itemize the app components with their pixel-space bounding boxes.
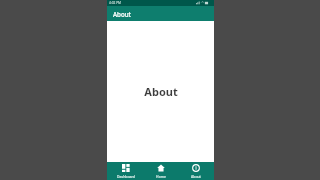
staticText: Home: [156, 174, 166, 179]
staticText: 4:02 PM: [109, 1, 122, 5]
button[interactable]: Home: [144, 162, 177, 180]
staticText: About: [113, 10, 131, 18]
staticText: About: [144, 84, 178, 99]
staticText: Dashboard: [117, 174, 135, 179]
button[interactable]: Dashboard: [109, 162, 142, 180]
staticText: About: [191, 174, 201, 179]
button[interactable]: About: [179, 162, 212, 180]
